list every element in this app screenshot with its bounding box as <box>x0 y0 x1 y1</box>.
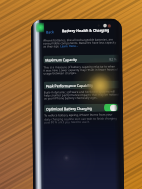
button[interactable]: Peak Performance Capability <box>44 80 120 89</box>
staticText: Battery Health & Charging <box>62 27 110 33</box>
button[interactable]: Optimized Battery Charging toggle <box>104 103 118 112</box>
staticText: usage between charges. <box>43 71 78 75</box>
staticText: past 80 % until you need to use it. <box>44 120 90 124</box>
staticText: This is a measure of battery capacity re… <box>43 64 115 69</box>
staticText: as they age. <box>43 44 60 48</box>
staticText: Maximum Capacity <box>45 57 77 62</box>
staticText: consumable components. Batteries have le… <box>43 40 116 45</box>
button[interactable]: Back <box>46 29 54 34</box>
button[interactable]: Maximum Capacity <box>43 54 119 63</box>
staticText: Optimized Battery Charging <box>46 106 92 111</box>
staticText: daily charging routine so it can wait to… <box>44 116 117 121</box>
staticText: To reduce battery ageing, iPhone learns … <box>44 112 113 117</box>
staticText: 82 % <box>109 56 117 60</box>
staticText: iPhone batteries, like all rechargeable … <box>43 37 113 42</box>
staticText: Learn more... <box>60 44 79 48</box>
staticText: Built-in dynamic software and hardware s… <box>44 89 116 94</box>
button[interactable]: Learn more... <box>60 44 79 48</box>
button[interactable]: Optimized Battery Charging <box>44 103 120 112</box>
staticText: it was new. Lower capacity may result in… <box>43 67 118 72</box>
staticText: help counter performance impacts that ma… <box>44 92 119 97</box>
staticText: as your iPhone battery chemically ages. <box>44 96 98 100</box>
staticText: Back <box>46 29 54 34</box>
staticText: Peak Performance Capability <box>46 83 94 88</box>
